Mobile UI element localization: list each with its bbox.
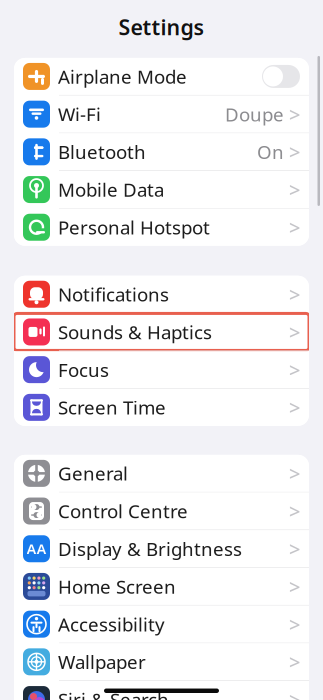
staticText: > — [289, 214, 300, 241]
button[interactable]: Focus — [14, 351, 309, 388]
staticText: > — [289, 498, 300, 524]
button[interactable]: Siri & Search — [14, 681, 309, 700]
staticText: Siri & Search — [58, 687, 169, 700]
button[interactable]: Airplane Mode — [14, 58, 309, 95]
button[interactable]: Notifications — [14, 276, 309, 313]
staticText: > — [289, 686, 300, 700]
staticText: Home Screen — [58, 574, 176, 599]
staticText: Bluetooth — [58, 139, 146, 164]
button[interactable]: Bluetooth — [14, 133, 309, 170]
staticText: > — [289, 319, 300, 345]
staticText: Accessibility — [58, 612, 165, 637]
staticText: > — [289, 394, 300, 421]
staticText: AA — [26, 539, 46, 558]
button[interactable]: Screen Time — [14, 389, 309, 426]
button[interactable]: Wi-Fi — [14, 96, 309, 133]
button[interactable]: AA — [14, 530, 309, 567]
staticText: > — [289, 611, 300, 637]
staticText: > — [289, 139, 300, 165]
staticText: > — [289, 649, 300, 675]
button[interactable]: General — [14, 455, 309, 492]
button[interactable]: Wallpaper — [14, 643, 309, 680]
staticText: Display & Brightness — [58, 536, 242, 561]
staticText: On — [257, 139, 284, 164]
button[interactable]: Sounds & Haptics — [14, 313, 309, 350]
staticText: > — [289, 573, 300, 600]
staticText: Mobile Data — [58, 177, 164, 202]
staticText: > — [289, 101, 300, 127]
button[interactable]: Control Centre — [14, 493, 309, 530]
staticText: Doupe — [225, 102, 284, 127]
staticText: Focus — [58, 357, 109, 382]
staticText: > — [289, 281, 300, 308]
staticText: Settings — [118, 13, 204, 41]
staticText: > — [289, 535, 300, 562]
button[interactable]: Personal Hotspot — [14, 209, 309, 246]
staticText: Personal Hotspot — [58, 215, 210, 240]
staticText: Control Centre — [58, 499, 188, 523]
staticText: Notifications — [58, 282, 169, 307]
staticText: Wallpaper — [58, 649, 146, 674]
staticText: > — [289, 460, 300, 487]
staticText: Wi-Fi — [58, 102, 101, 127]
button[interactable]: Mobile Data — [14, 171, 309, 208]
button[interactable]: Home Screen — [14, 568, 309, 605]
staticText: Sounds & Haptics — [58, 320, 212, 344]
staticText: Airplane Mode — [58, 64, 187, 89]
button[interactable]: Accessibility — [14, 606, 309, 643]
staticText: General — [58, 461, 128, 486]
staticText: Screen Time — [58, 395, 166, 420]
staticText: > — [289, 176, 300, 203]
staticText: > — [289, 356, 300, 383]
